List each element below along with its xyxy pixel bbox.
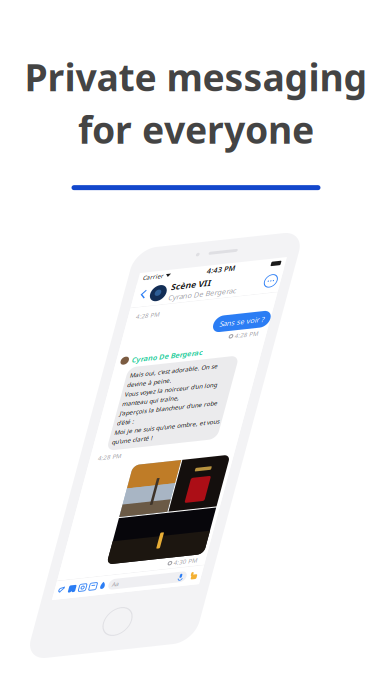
staticText: qu'une clarté !: [168, 464, 213, 473]
staticText: Mais oui, c'est adorable. On se: [168, 390, 265, 399]
staticText: for everyone: [78, 105, 314, 154]
staticText: Moi je ne suis qu'une ombre, et vous: [168, 454, 284, 462]
staticText: Vous voyez la noirceur d'un long: [168, 411, 270, 420]
staticText: Private messaging: [24, 52, 367, 102]
staticText: Carrier: [153, 279, 176, 288]
staticText: d'été :: [168, 443, 187, 452]
staticText: Cyrano De Bergerac: [165, 371, 243, 382]
staticText: 4:28 PM: [157, 481, 183, 490]
staticText: Sans se voir ?: [254, 341, 303, 351]
button[interactable]: Stickers: [186, 629, 194, 637]
staticText: J'aperçois la blancheur d'une robe: [168, 432, 276, 441]
button[interactable]: Back: [152, 293, 165, 312]
staticText: devine à peine.: [168, 400, 217, 409]
staticText: Cyrano De Bergerac: [188, 304, 263, 314]
staticText: manteau qui traîne,: [168, 422, 231, 430]
staticText: Scène VII: [188, 291, 232, 303]
